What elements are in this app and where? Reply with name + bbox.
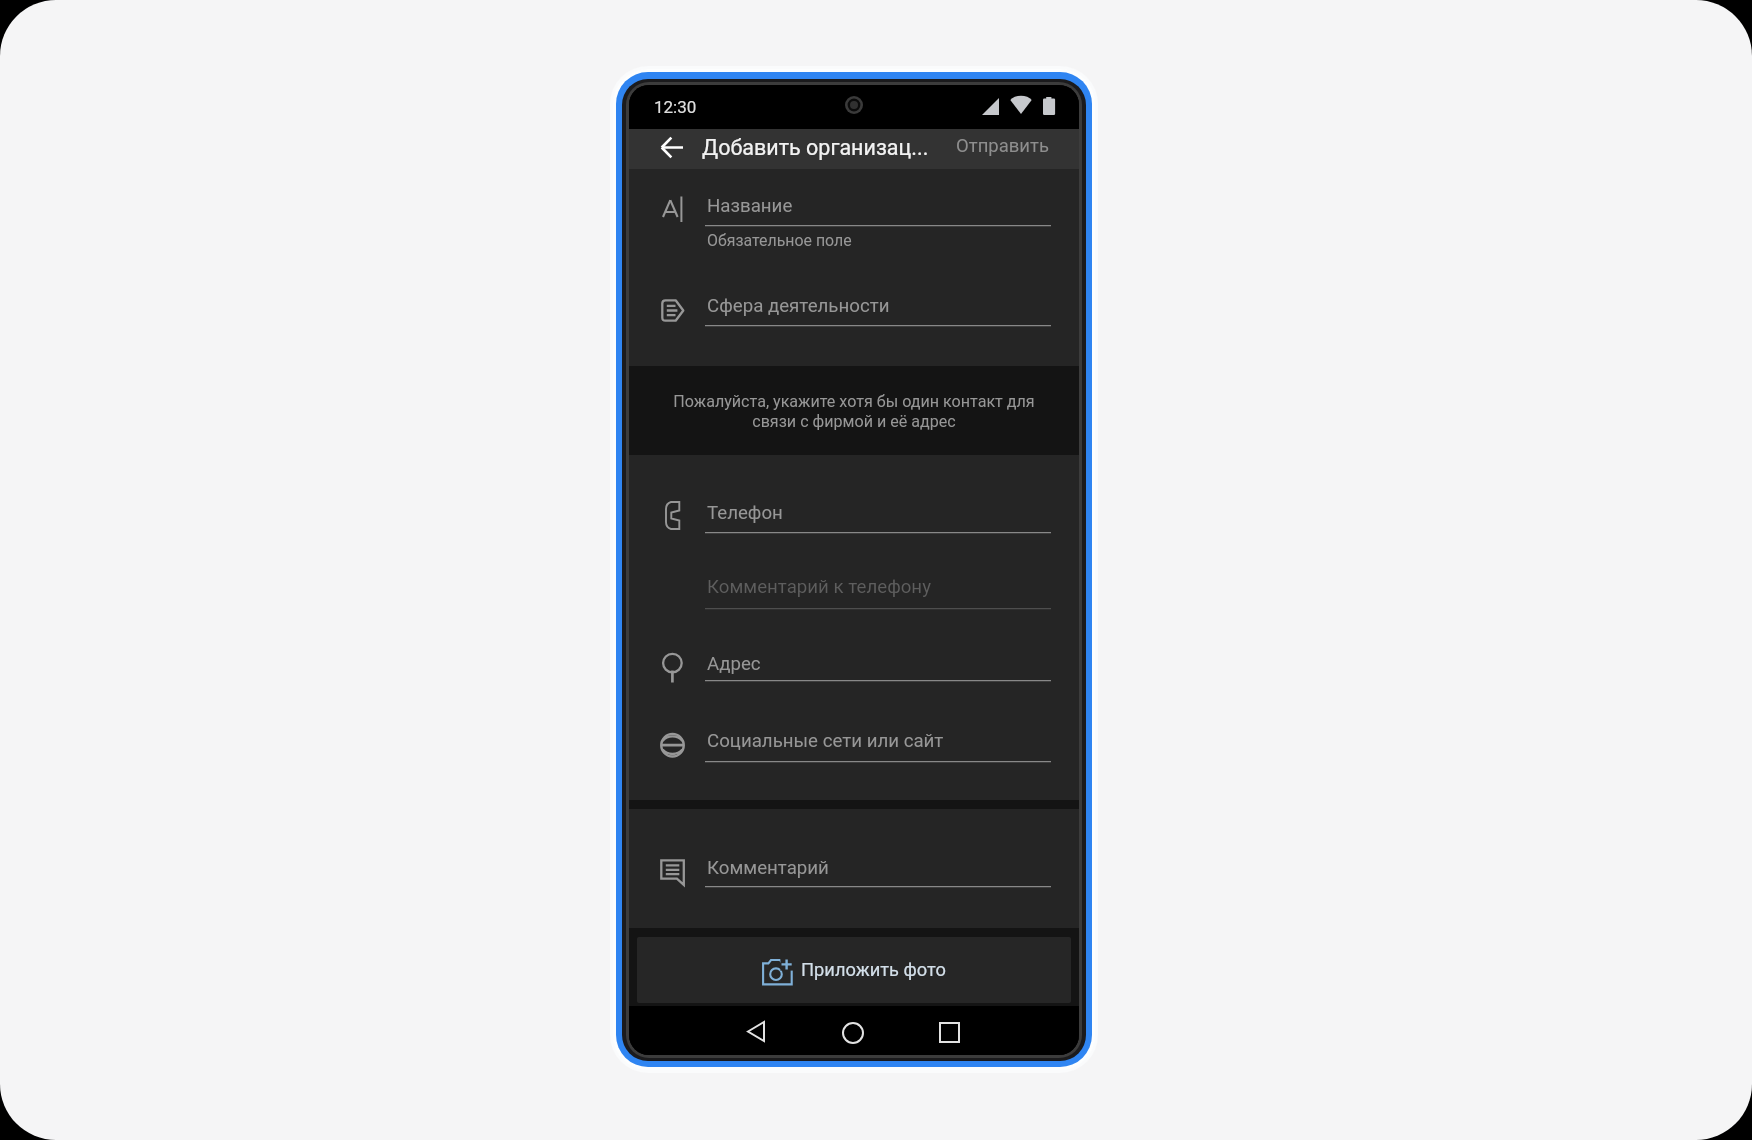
button[interactable]: Отправить [945,129,1038,169]
staticText: Отправить [956,135,1049,157]
staticText: Социальные сети или сайт [707,730,944,752]
button[interactable] [629,718,1079,772]
button[interactable]: Приложить фото [637,937,1071,1003]
staticText: Комментарий к телефону [707,576,931,598]
staticText: Название [707,195,793,217]
staticText: Обязательное поле [707,231,852,250]
staticText: Приложить фото [801,959,946,980]
button[interactable] [629,490,1079,544]
button[interactable]: Back [655,132,689,166]
staticText: Пожалуйста, укажите хотя бы один контакт… [673,392,1035,431]
staticText: Адрес [707,653,761,675]
button[interactable]: Back [740,1014,772,1046]
button[interactable] [629,641,1079,693]
button[interactable] [629,845,1079,897]
button[interactable]: Home [835,1014,867,1046]
button[interactable]: Recent apps [932,1014,964,1046]
staticText: Сфера деятельности [707,295,890,317]
staticText: Телефон [707,502,783,524]
button[interactable] [629,564,1079,618]
button[interactable] [629,283,1079,337]
button[interactable] [629,183,1079,241]
staticText: 12:30 [654,97,697,117]
staticText: Добавить организац... [702,135,929,160]
staticText: Комментарий [707,857,829,879]
